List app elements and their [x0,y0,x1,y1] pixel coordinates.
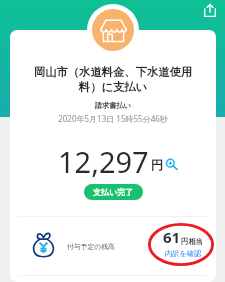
staticText: 内訳を確認 [165,249,202,258]
staticText: 付与予定の残高 [67,242,115,251]
staticText: 61 [163,227,181,247]
button[interactable]: 付与予定の残高 [10,217,216,275]
staticText: 12,297 [58,142,149,181]
staticText: 2020年5月13日 15時55分46秒 [10,113,216,124]
staticText: 円相当 [181,237,203,246]
staticText: 円 [151,157,163,172]
button[interactable]: Share [196,0,224,24]
button[interactable]: 支払い完了 [84,184,143,200]
staticText: 支払い完了 [93,187,134,197]
staticText: 岡山市（水道料金、下水道使用 料）に支払い [10,65,216,95]
staticText: 請求書払い [10,101,216,110]
